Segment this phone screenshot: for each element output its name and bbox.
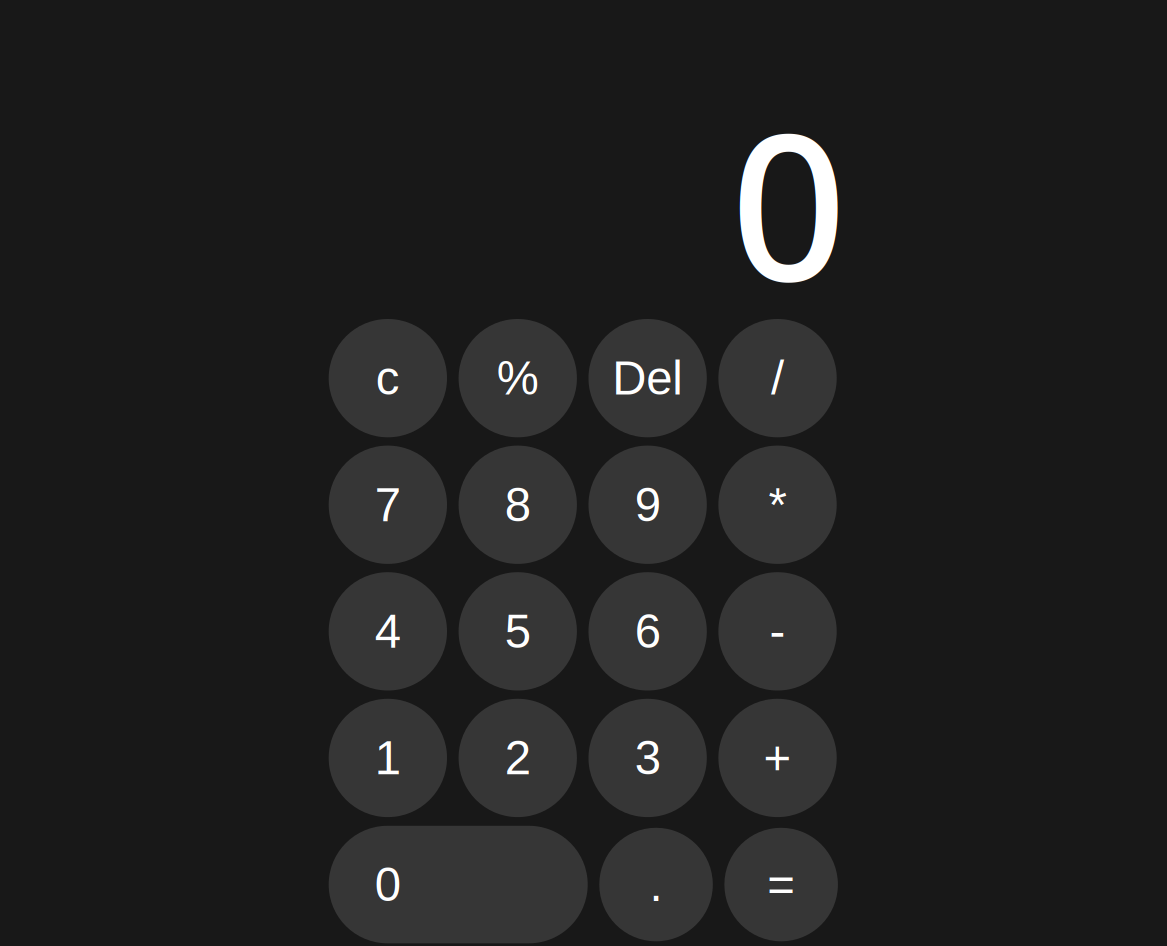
button[interactable]: 7 <box>329 446 447 564</box>
staticText: 9 <box>635 478 661 531</box>
staticText: 7 <box>375 478 401 531</box>
button[interactable]: 6 <box>588 572 707 690</box>
staticText: % <box>497 352 539 405</box>
staticText: 2 <box>505 731 531 784</box>
staticText: Del <box>612 352 683 405</box>
staticText: 0 <box>731 64 847 340</box>
staticText: 6 <box>635 605 661 658</box>
button[interactable]: / <box>718 319 837 437</box>
staticText: * <box>769 478 787 531</box>
button[interactable]: 4 <box>329 572 447 690</box>
button[interactable]: c <box>329 319 447 437</box>
button[interactable]: Del <box>588 319 707 437</box>
staticText: 3 <box>635 731 661 784</box>
button[interactable]: - <box>718 572 837 690</box>
staticText: / <box>771 352 784 405</box>
button[interactable]: * <box>718 446 837 564</box>
button[interactable]: 5 <box>459 572 577 690</box>
button[interactable]: + <box>718 699 837 817</box>
staticText: - <box>770 605 786 658</box>
button[interactable]: 1 <box>329 699 447 817</box>
button[interactable]: 0 <box>329 826 588 943</box>
staticText: 5 <box>505 605 531 658</box>
button[interactable]: . <box>599 828 713 941</box>
button[interactable]: 2 <box>459 699 577 817</box>
staticText: 0 <box>375 858 401 911</box>
staticText: = <box>767 858 795 911</box>
staticText: 1 <box>375 731 401 784</box>
staticText: 4 <box>375 605 401 658</box>
staticText: . <box>649 858 662 911</box>
button[interactable]: 3 <box>588 699 707 817</box>
staticText: c <box>376 352 400 405</box>
button[interactable]: 9 <box>588 446 707 564</box>
button[interactable]: 8 <box>459 446 577 564</box>
staticText: 8 <box>505 478 531 531</box>
button[interactable]: % <box>459 319 577 437</box>
button[interactable]: = <box>724 828 838 941</box>
staticText: + <box>764 731 792 784</box>
